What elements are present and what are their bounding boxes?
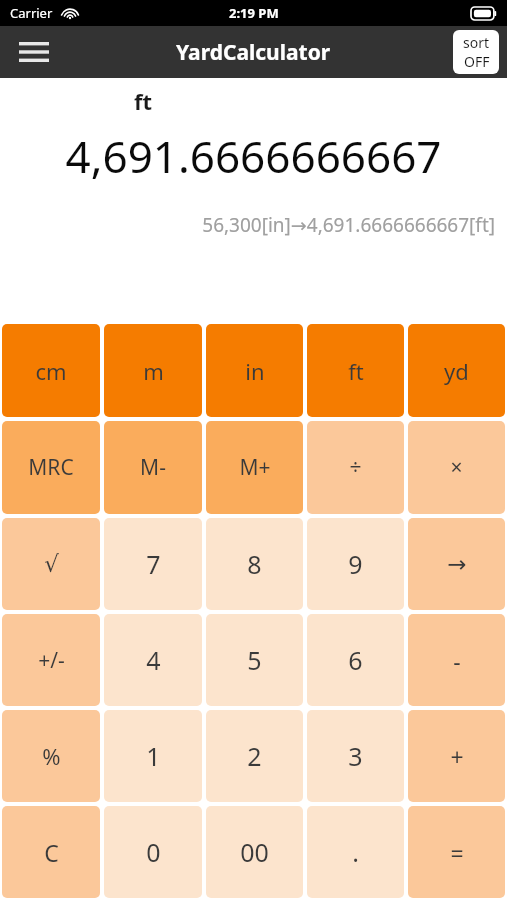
button[interactable]: ÷ <box>307 421 404 514</box>
button[interactable]: - <box>408 614 505 706</box>
button[interactable]: 9 <box>307 518 404 610</box>
staticText: Carrier <box>10 4 53 22</box>
staticText: +/- <box>38 646 65 675</box>
staticText: 2:19 PM <box>229 4 279 22</box>
button[interactable]: 1 <box>104 710 202 802</box>
button[interactable]: 00 <box>206 806 303 898</box>
staticText: 6 <box>348 643 363 677</box>
staticText: √ <box>44 551 59 578</box>
button[interactable]: in <box>206 324 303 417</box>
button[interactable]: cm <box>2 324 100 417</box>
button[interactable]: M- <box>104 421 202 514</box>
button[interactable]: 4 <box>104 614 202 706</box>
button[interactable]: 7 <box>104 518 202 610</box>
button[interactable]: + <box>408 710 505 802</box>
button[interactable]: C <box>2 806 100 898</box>
staticText: 9 <box>348 547 363 581</box>
staticText: M+ <box>239 453 271 482</box>
button[interactable]: +/- <box>2 614 100 706</box>
staticText: sort <box>463 33 490 52</box>
staticText: C <box>44 837 59 868</box>
button[interactable]: m <box>104 324 202 417</box>
staticText: + <box>450 741 464 772</box>
staticText: yd <box>444 356 469 386</box>
staticText: 2 <box>247 739 262 773</box>
staticText: × <box>450 453 463 482</box>
staticText: YardCalculator <box>176 38 331 67</box>
staticText: 1 <box>146 739 161 773</box>
button[interactable]: 8 <box>206 518 303 610</box>
staticText: MRC <box>28 453 74 482</box>
button[interactable]: yd <box>408 324 505 417</box>
staticText: 8 <box>247 547 262 581</box>
staticText: 0 <box>146 835 161 869</box>
staticText: in <box>245 356 265 386</box>
staticText: 5 <box>247 643 262 677</box>
button[interactable]: ft <box>307 324 404 417</box>
staticText: 7 <box>146 547 161 581</box>
staticText: ft <box>348 356 364 386</box>
button[interactable]: . <box>307 806 404 898</box>
staticText: . <box>352 835 359 869</box>
button[interactable]: sort <box>453 30 499 74</box>
staticText: cm <box>35 356 67 386</box>
staticText: - <box>453 645 461 676</box>
staticText: = <box>450 837 464 868</box>
button[interactable]: 3 <box>307 710 404 802</box>
staticText: ft <box>134 86 153 116</box>
staticText: m <box>143 356 164 386</box>
button[interactable]: 6 <box>307 614 404 706</box>
button[interactable]: Menu <box>12 30 56 74</box>
button[interactable]: 5 <box>206 614 303 706</box>
button[interactable]: = <box>408 806 505 898</box>
staticText: 00 <box>240 835 269 869</box>
staticText: OFF <box>464 52 490 71</box>
staticText: 3 <box>348 739 363 773</box>
staticText: % <box>42 741 61 771</box>
staticText: 56,300[in]→4,691.6666666667[ft] <box>0 212 495 238</box>
button[interactable]: √ <box>2 518 100 610</box>
button[interactable]: % <box>2 710 100 802</box>
button[interactable]: × <box>408 421 505 514</box>
staticText: → <box>447 551 467 578</box>
button[interactable]: M+ <box>206 421 303 514</box>
button[interactable]: → <box>408 518 505 610</box>
staticText: 4,691.6666666667 <box>0 126 507 186</box>
button[interactable]: 0 <box>104 806 202 898</box>
staticText: ÷ <box>349 453 362 482</box>
staticText: M- <box>140 453 166 482</box>
button[interactable]: 2 <box>206 710 303 802</box>
button[interactable]: MRC <box>2 421 100 514</box>
staticText: 4 <box>146 643 161 677</box>
